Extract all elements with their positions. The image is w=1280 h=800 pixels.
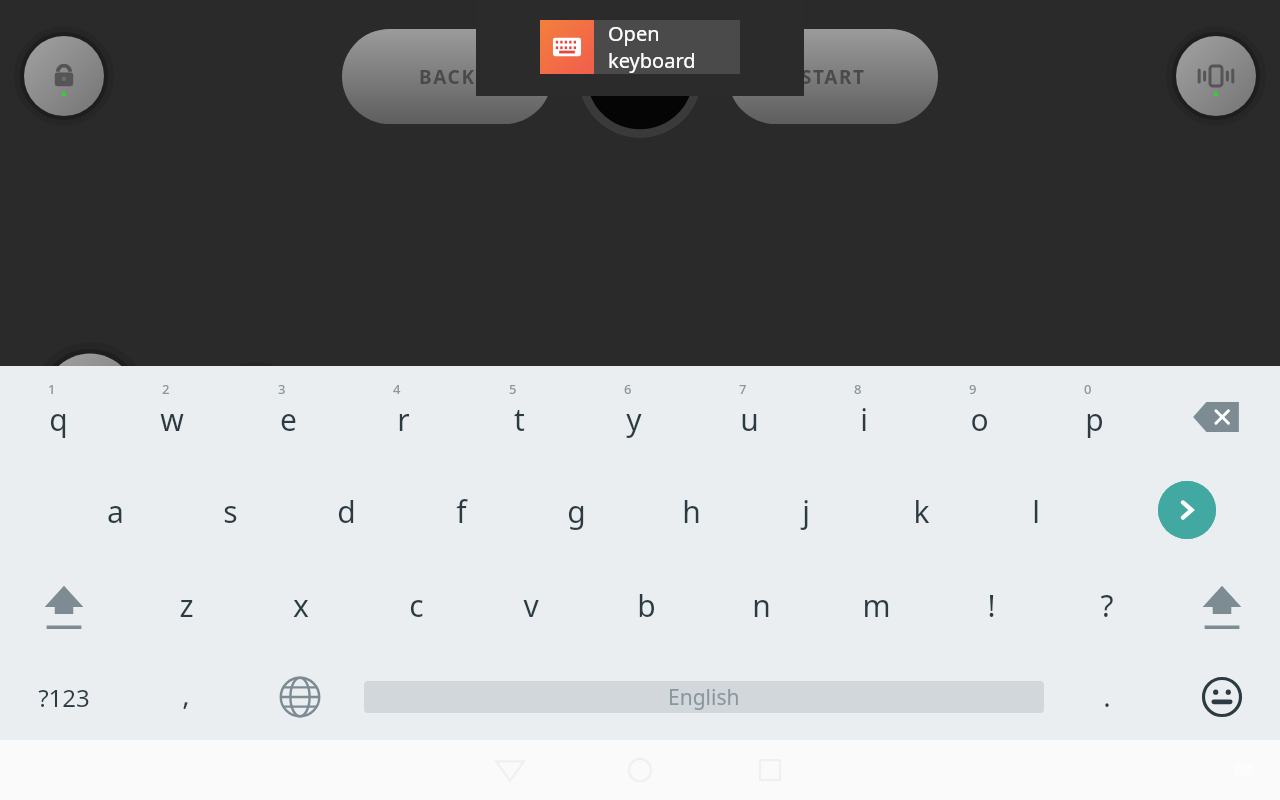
staticText: START [801,64,866,90]
staticText: a [107,491,124,532]
button[interactable]: Shift [1170,560,1274,652]
staticText: . [1103,677,1111,715]
staticText: 7 [739,380,747,398]
button[interactable]: e [236,376,340,462]
staticText: u [740,399,759,440]
staticText: z [179,585,194,626]
button[interactable]: p [1042,376,1146,462]
button[interactable]: ! [939,562,1043,648]
staticText: Open [608,20,660,47]
button[interactable]: Dial [578,14,702,138]
staticText: n [752,585,771,626]
button[interactable]: c [364,562,468,648]
button[interactable]: j [754,468,858,554]
button[interactable]: Shift [12,560,116,652]
staticText: b [637,585,656,626]
staticText: 5 [509,380,517,398]
button[interactable]: Lock [14,26,114,126]
button[interactable]: x [249,562,353,648]
staticText: c [409,585,424,626]
staticText: 1 [48,380,56,398]
button[interactable]: ? [1055,562,1159,648]
staticText: t [514,399,525,440]
staticText: ! [987,585,996,626]
staticText: keyboard [608,47,696,74]
staticText: v [523,585,539,626]
staticText: i [860,399,868,440]
staticText: r [397,399,410,440]
staticText: 3 [278,380,286,398]
button[interactable]: Emoji [1179,660,1265,734]
button[interactable]: START [728,29,938,124]
button[interactable]: BACK [342,29,552,124]
button[interactable]: l [984,468,1088,554]
staticText: p [1085,399,1104,440]
button[interactable]: w [120,376,224,462]
button[interactable]: Enter [1158,481,1216,539]
staticText: g [567,491,586,532]
staticText: o [970,399,989,440]
button[interactable]: h [639,468,743,554]
staticText: BACK [419,64,476,90]
button[interactable]: n [709,562,813,648]
staticText: f [456,491,467,532]
button[interactable]: Knob [198,362,314,478]
button[interactable]: g [524,468,628,554]
staticText: x [293,585,309,626]
staticText: d [337,491,356,532]
button[interactable]: m [824,562,928,648]
button[interactable]: o [927,376,1031,462]
staticText: ?123 [38,681,90,714]
staticText: j [802,491,810,532]
staticText: , [182,675,190,713]
staticText: 2 [162,380,170,398]
button[interactable]: s [178,468,282,554]
button[interactable]: t [467,376,571,462]
button[interactable]: , [134,651,238,737]
button[interactable]: y [582,376,686,462]
button[interactable]: k [869,468,973,554]
button[interactable]: Backspace [1166,373,1266,461]
button[interactable]: ?123 [12,654,116,740]
staticText: w [160,399,184,440]
staticText: m [862,585,891,626]
staticText: l [1032,491,1040,532]
button[interactable]: Knob [32,342,148,458]
button[interactable]: Open [476,0,804,96]
button[interactable]: Change language [257,660,343,734]
button[interactable]: Enter [1140,466,1234,554]
button[interactable]: English [364,681,1044,713]
staticText: s [223,491,238,532]
staticText: English [668,683,740,712]
button[interactable]: . [1055,653,1159,739]
staticText: 9 [969,380,977,398]
staticText: q [49,399,68,440]
staticText: h [682,491,701,532]
staticText: ? [1100,585,1114,626]
button[interactable]: f [409,468,513,554]
staticText: 0 [1084,380,1092,398]
staticText: 6 [624,380,632,398]
button[interactable]: r [351,376,455,462]
button[interactable]: v [479,562,583,648]
staticText: y [626,399,642,440]
button[interactable]: d [294,468,398,554]
staticText: 4 [393,380,401,398]
button[interactable]: a [63,468,167,554]
staticText: 8 [854,380,862,398]
button[interactable]: q [6,376,110,462]
button[interactable]: b [594,562,698,648]
button[interactable]: u [697,376,801,462]
button[interactable]: i [812,376,916,462]
staticText: k [913,491,930,532]
button[interactable]: z [134,562,238,648]
staticText: e [280,399,297,440]
button[interactable]: Vibrate [1166,26,1266,126]
